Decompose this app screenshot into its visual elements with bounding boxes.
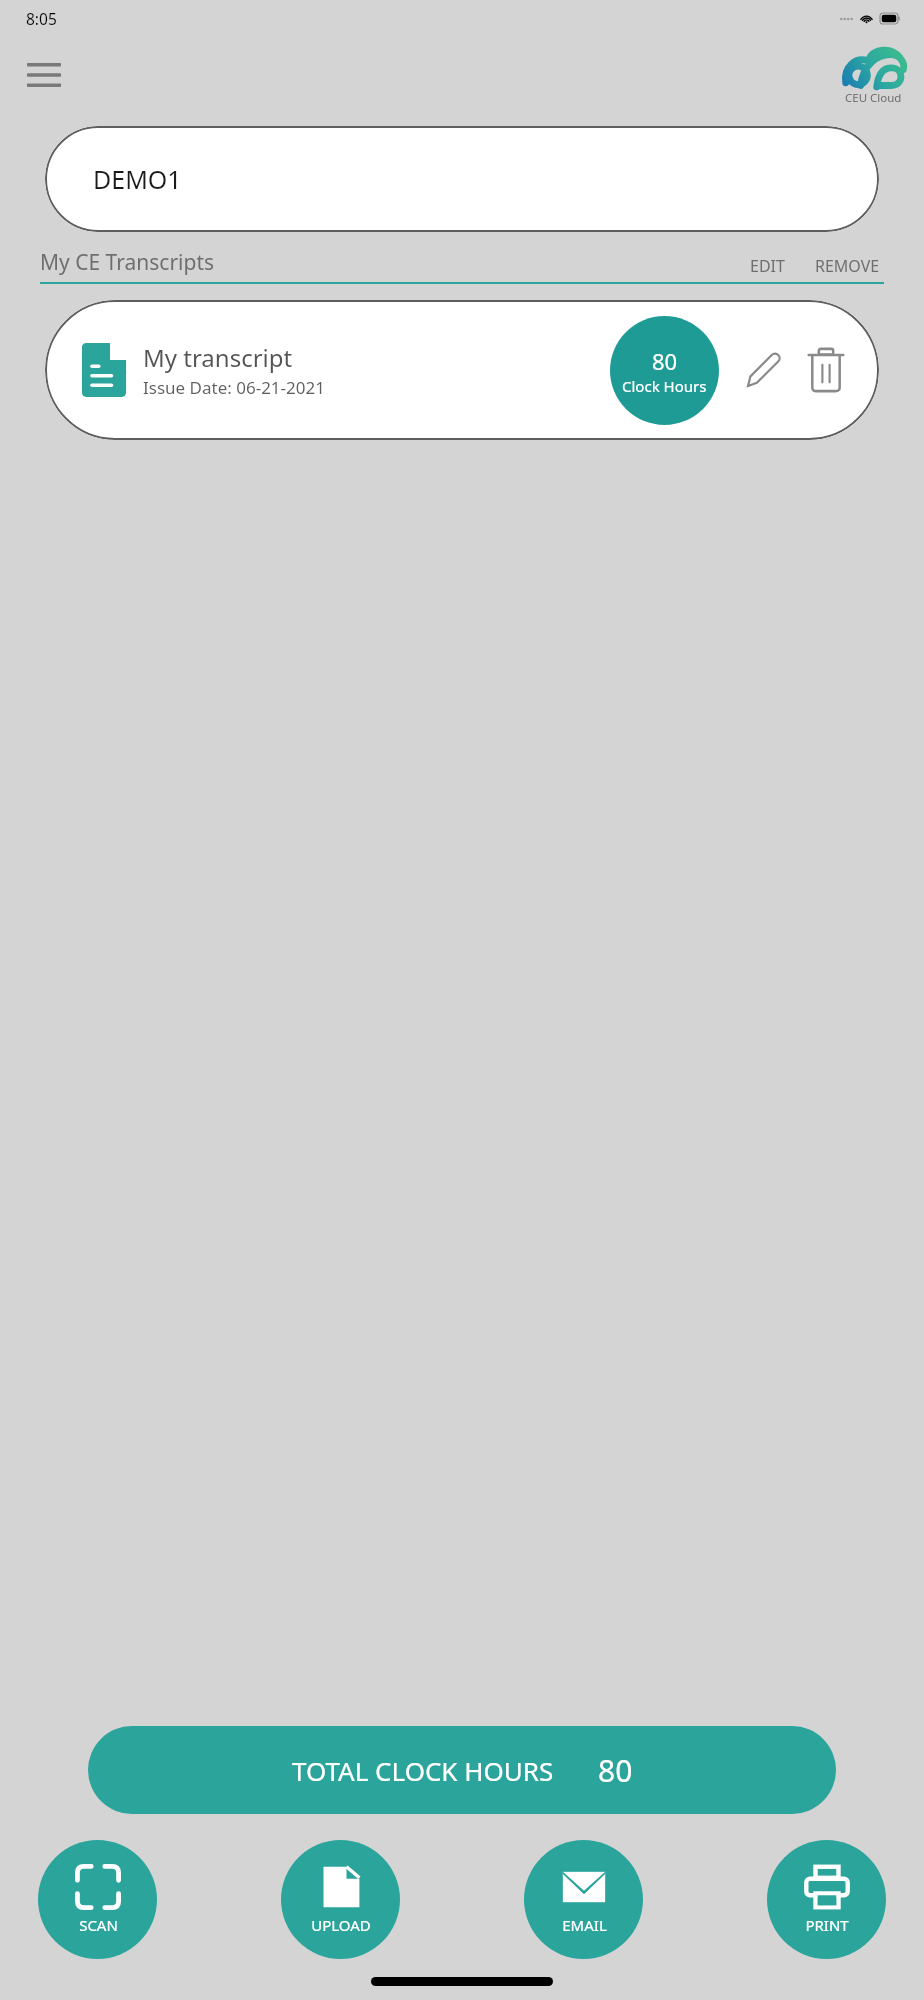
button[interactable]: TOTAL CLOCK HOURS <box>88 1726 836 1814</box>
staticText: DEMO1 <box>93 162 182 196</box>
button[interactable]: REMOVE <box>811 255 884 277</box>
button[interactable]: PRINT <box>767 1840 886 1959</box>
button[interactable]: CEU Cloud logo <box>842 45 904 106</box>
button[interactable]: EDIT <box>746 255 789 277</box>
button[interactable]: 80 <box>610 316 719 425</box>
button[interactable]: SCAN <box>38 1840 157 1959</box>
staticText: Issue Date: 06-21-2021 <box>143 376 325 399</box>
staticText: REMOVE <box>815 255 880 277</box>
staticText: 80 <box>598 1750 633 1791</box>
button[interactable]: UPLOAD <box>281 1840 400 1959</box>
button[interactable]: DEMO1 <box>45 126 879 232</box>
staticText: TOTAL CLOCK HOURS <box>292 1753 554 1788</box>
staticText: Clock Hours <box>622 376 707 396</box>
staticText: 80 <box>652 346 678 376</box>
staticText: 8:05 <box>26 8 57 29</box>
staticText: EDIT <box>750 255 785 277</box>
staticText: UPLOAD <box>311 1915 371 1935</box>
staticText: My transcript <box>143 341 293 374</box>
button[interactable]: Menu <box>20 51 68 99</box>
staticText: CEU Cloud <box>845 90 902 106</box>
button[interactable]: EMAIL <box>524 1840 643 1959</box>
button[interactable]: Edit <box>737 343 791 397</box>
staticText: SCAN <box>79 1915 118 1935</box>
staticText: My CE Transcripts <box>40 248 746 277</box>
button[interactable]: My transcript <box>45 300 879 440</box>
button[interactable]: Delete <box>799 343 853 397</box>
staticText: PRINT <box>805 1915 849 1935</box>
staticText: EMAIL <box>562 1915 607 1935</box>
